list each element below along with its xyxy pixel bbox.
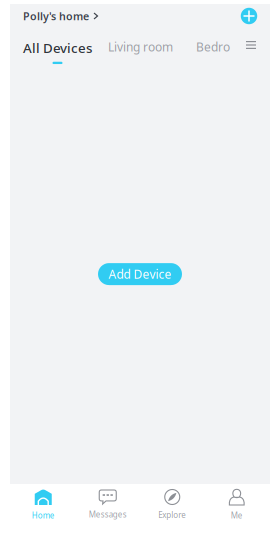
button[interactable]: Show rooms [246,39,256,49]
button[interactable]: Me [204,489,269,521]
staticText: Bedro [196,39,230,55]
button[interactable]: Add Device [98,263,182,285]
staticText: All Devices [23,39,92,57]
staticText: Me [231,510,243,521]
staticText: Messages [89,509,127,520]
button[interactable]: Explore [140,489,204,520]
button[interactable]: Add device [238,5,260,27]
staticText: Add Device [108,266,171,282]
button[interactable]: Living room [108,39,173,55]
staticText: Polly's home [23,9,89,23]
staticText: Explore [158,509,186,520]
staticText: Living room [108,39,173,55]
staticText: Home [32,510,55,521]
button[interactable]: Bedro [196,39,230,55]
button[interactable]: Messages [75,490,140,520]
button[interactable]: Polly's home [23,5,97,27]
button[interactable]: Home [11,489,75,521]
button[interactable]: All Devices [23,39,92,57]
